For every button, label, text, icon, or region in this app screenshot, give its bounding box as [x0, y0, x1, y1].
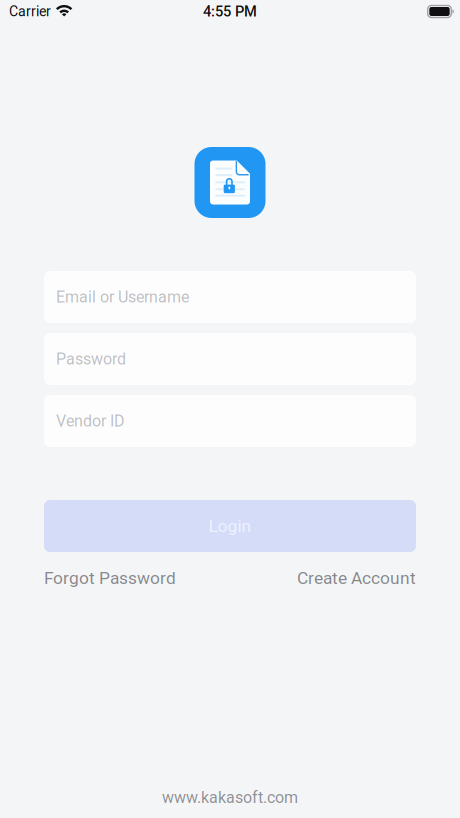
staticText: Email or Username [56, 288, 189, 306]
staticText: 4:55 PM [203, 3, 257, 20]
button[interactable]: Forgot Password [44, 568, 176, 588]
staticText: Forgot Password [44, 568, 176, 588]
staticText: Password [56, 350, 126, 368]
button[interactable]: Password [44, 333, 416, 385]
button[interactable]: Email or Username [44, 271, 416, 323]
button[interactable]: Vendor ID [44, 395, 416, 447]
staticText: www.kakasoft.com [162, 788, 298, 807]
staticText: Create Account [297, 568, 416, 588]
staticText: Carrier [9, 3, 51, 20]
staticText: Login [208, 516, 251, 536]
staticText: Vendor ID [56, 412, 125, 430]
button[interactable]: Create Account [297, 568, 416, 588]
